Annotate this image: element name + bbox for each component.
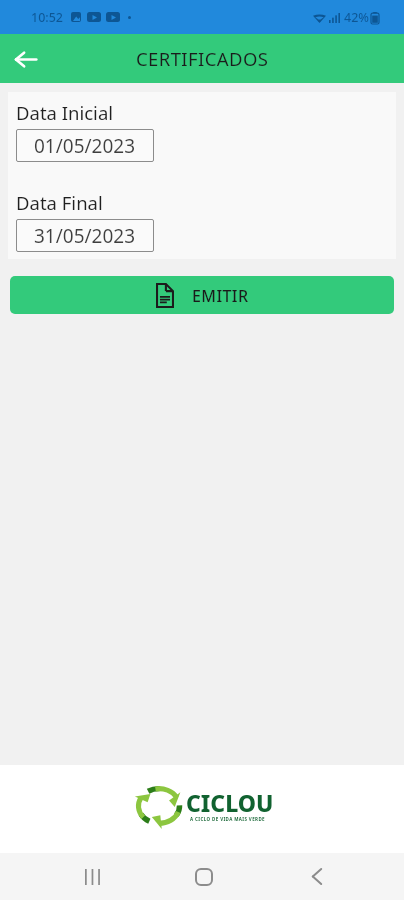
button[interactable]: Back: [5, 39, 45, 79]
staticText: 10:52: [31, 9, 64, 26]
staticText: 31/05/2023: [34, 223, 136, 249]
button[interactable]: Recents: [68, 853, 116, 900]
staticText: CICLOU: [186, 787, 274, 818]
staticText: Data Inicial: [16, 100, 114, 125]
staticText: CERTIFICADOS: [136, 46, 269, 71]
staticText: 01/05/2023: [34, 133, 136, 159]
staticText: 42%: [344, 9, 369, 26]
staticText: A CICLO DE VIDA MAIS VERDE: [190, 816, 265, 822]
button[interactable]: 01/05/2023: [16, 129, 154, 162]
staticText: EMITIR: [192, 285, 249, 307]
button[interactable]: Home: [180, 853, 228, 900]
button[interactable]: 31/05/2023: [16, 219, 154, 252]
staticText: Data Final: [16, 190, 103, 215]
button[interactable]: EMITIR: [10, 276, 394, 314]
button[interactable]: Back: [293, 853, 341, 900]
